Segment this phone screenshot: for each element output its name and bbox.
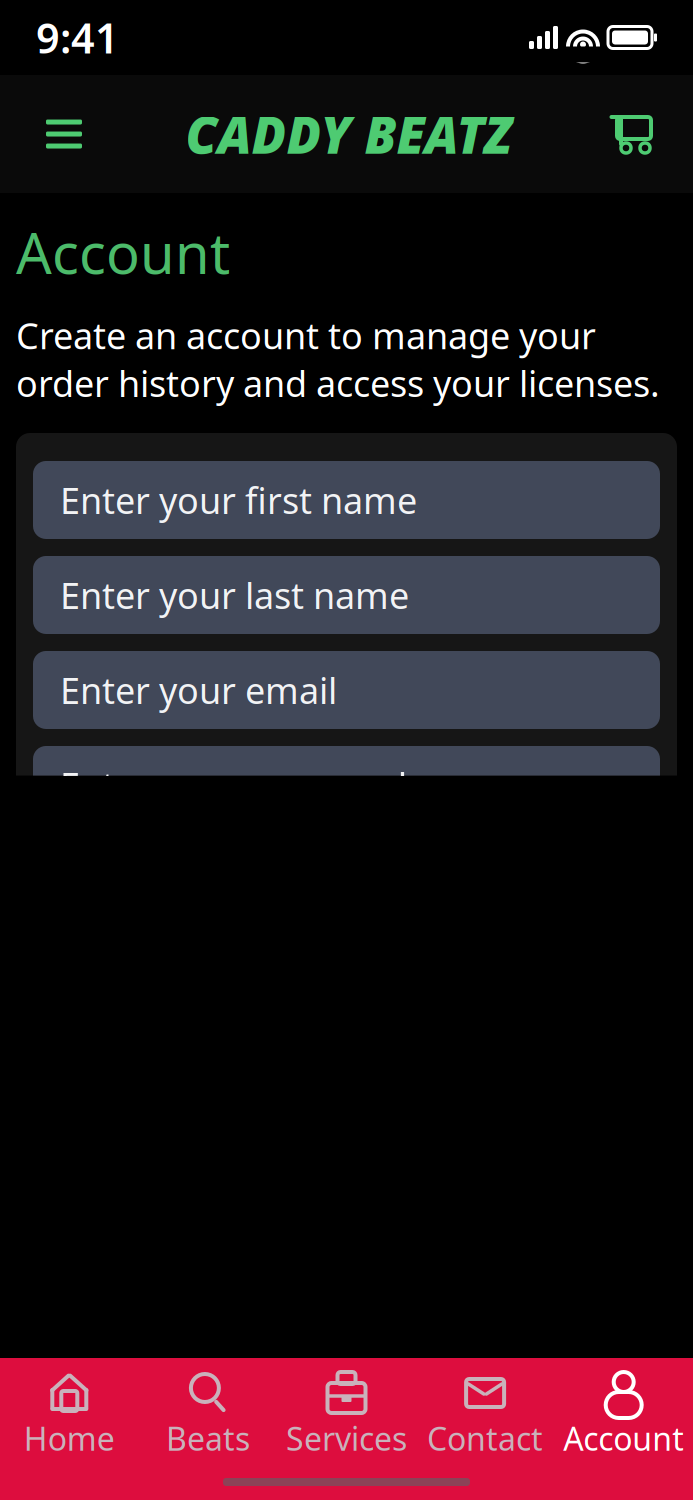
button[interactable]: Enter your first name — [33, 461, 660, 539]
button[interactable]: Contact — [416, 1358, 554, 1465]
button[interactable]: Beats — [139, 1358, 277, 1465]
button[interactable]: Home — [0, 1358, 139, 1465]
button[interactable]: Menu — [34, 104, 94, 164]
staticText: Beats — [166, 1417, 250, 1459]
staticText: 9:41 — [36, 10, 119, 65]
staticText: Enter your last name — [60, 571, 409, 619]
button[interactable]: Account — [554, 1358, 693, 1465]
staticText: Create an account to manage your order h… — [16, 311, 660, 407]
button[interactable]: Enter your email — [33, 651, 660, 729]
staticText: Enter your password — [60, 761, 407, 809]
button[interactable]: Enter your last name — [33, 556, 660, 634]
staticText: Contact — [427, 1417, 543, 1459]
staticText: Home — [24, 1417, 115, 1459]
staticText: Enter your email — [60, 666, 337, 714]
staticText: CADDY BEATZ — [185, 100, 511, 168]
button[interactable]: Cart — [603, 104, 659, 164]
button[interactable]: Services — [277, 1358, 416, 1465]
button[interactable]: Enter your password — [33, 746, 660, 824]
button[interactable]: CADDY BEATZ — [185, 100, 511, 168]
staticText: Account — [16, 215, 230, 289]
staticText: Account — [563, 1417, 684, 1459]
staticText: Enter your first name — [60, 476, 417, 524]
staticText: Services — [286, 1417, 407, 1459]
